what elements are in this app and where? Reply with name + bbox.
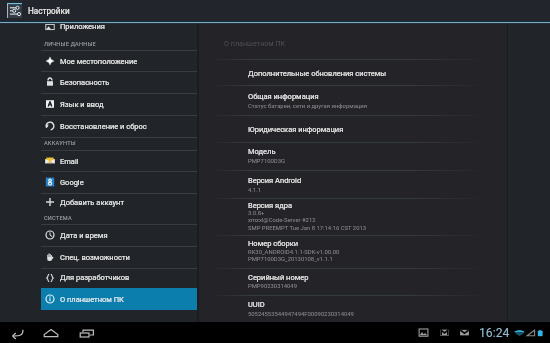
button[interactable]: Back bbox=[7, 323, 27, 343]
staticText: Дополнительные обновления системы bbox=[248, 69, 387, 78]
button[interactable]: Recent apps bbox=[77, 323, 97, 343]
staticText: SMP PREEMPT Tue Jan 8 17:14:16 CST 2013 bbox=[248, 225, 367, 232]
staticText: О планшетном ПК bbox=[224, 39, 286, 47]
button[interactable]: Спец. возможности bbox=[41, 246, 197, 268]
button[interactable] bbox=[199, 198, 507, 234]
staticText: Приложения bbox=[60, 22, 105, 31]
button[interactable] bbox=[199, 115, 507, 142]
staticText: Юридическая информация bbox=[248, 125, 344, 134]
staticText: 16:24 bbox=[479, 326, 510, 340]
staticText: PMP7100D3G_20130108_v1.1.1 bbox=[248, 256, 333, 263]
staticText: Для разработчиков bbox=[60, 273, 130, 282]
staticText: Спец. возможности bbox=[60, 253, 130, 262]
staticText: Безопасность bbox=[60, 78, 110, 87]
staticText: Мое местоположение bbox=[60, 57, 138, 66]
button[interactable] bbox=[199, 59, 507, 85]
staticText: АККАУНТЫ bbox=[44, 140, 76, 147]
staticText: Версия Android bbox=[248, 176, 302, 185]
staticText: 4.1.1 bbox=[248, 187, 262, 194]
staticText: Дата и время bbox=[60, 231, 108, 240]
staticText: Номер сборки bbox=[248, 239, 299, 248]
staticText: Общая информация bbox=[248, 92, 319, 101]
staticText: 3.0.8+ bbox=[248, 210, 265, 217]
staticText: ЛИЧНЫЕ ДАННЫЕ bbox=[44, 41, 96, 48]
button[interactable]: Home bbox=[41, 323, 61, 343]
button[interactable]: Дата и время bbox=[41, 224, 197, 246]
button[interactable] bbox=[199, 235, 507, 268]
button[interactable]: Язык и ввод bbox=[41, 93, 197, 115]
staticText: Восстановление и сброс bbox=[60, 122, 147, 131]
staticText: RK30_ANDROID4.1.1-SDK-v1.00.00 bbox=[248, 249, 340, 256]
button[interactable] bbox=[199, 170, 507, 198]
staticText: PMP7100D3G bbox=[248, 158, 286, 165]
staticText: UUID bbox=[248, 300, 265, 309]
button[interactable] bbox=[199, 268, 507, 295]
staticText: Язык и ввод bbox=[60, 100, 104, 109]
button[interactable]: Безопасность bbox=[41, 71, 197, 93]
staticText: Статус батареи, сети и другая информация bbox=[248, 103, 367, 110]
button[interactable]: Восстановление и сброс bbox=[41, 115, 197, 137]
button[interactable]: Для разработчиков bbox=[41, 267, 197, 288]
staticText: Google bbox=[60, 178, 84, 187]
staticText: Добавить аккаунт bbox=[60, 198, 124, 207]
staticText: Настройки bbox=[28, 6, 70, 16]
staticText: Серийный номер bbox=[248, 273, 309, 282]
button[interactable]: Мое местоположение bbox=[41, 50, 197, 72]
staticText: 50524553544947494F00090230314049 bbox=[248, 311, 354, 318]
staticText: Модель bbox=[248, 147, 276, 156]
button[interactable] bbox=[199, 85, 507, 114]
button[interactable]: Settings bbox=[7, 3, 22, 18]
staticText: Email bbox=[60, 157, 79, 166]
staticText: PMP90230314049 bbox=[248, 283, 297, 290]
button[interactable]: Email bbox=[41, 150, 197, 172]
staticText: Версия ядра bbox=[248, 201, 293, 210]
button[interactable] bbox=[199, 142, 507, 170]
staticText: СИСТЕМА bbox=[44, 215, 72, 222]
button[interactable]: Google bbox=[41, 171, 197, 193]
button[interactable]: Добавить аккаунт bbox=[41, 192, 197, 212]
staticText: О планшетном ПК bbox=[60, 295, 124, 304]
staticText: xmzxl@Code-Server #212 bbox=[248, 217, 316, 224]
button[interactable]: Приложения bbox=[41, 16, 197, 37]
button[interactable]: О планшетном ПК bbox=[41, 288, 197, 310]
button[interactable] bbox=[199, 295, 507, 322]
